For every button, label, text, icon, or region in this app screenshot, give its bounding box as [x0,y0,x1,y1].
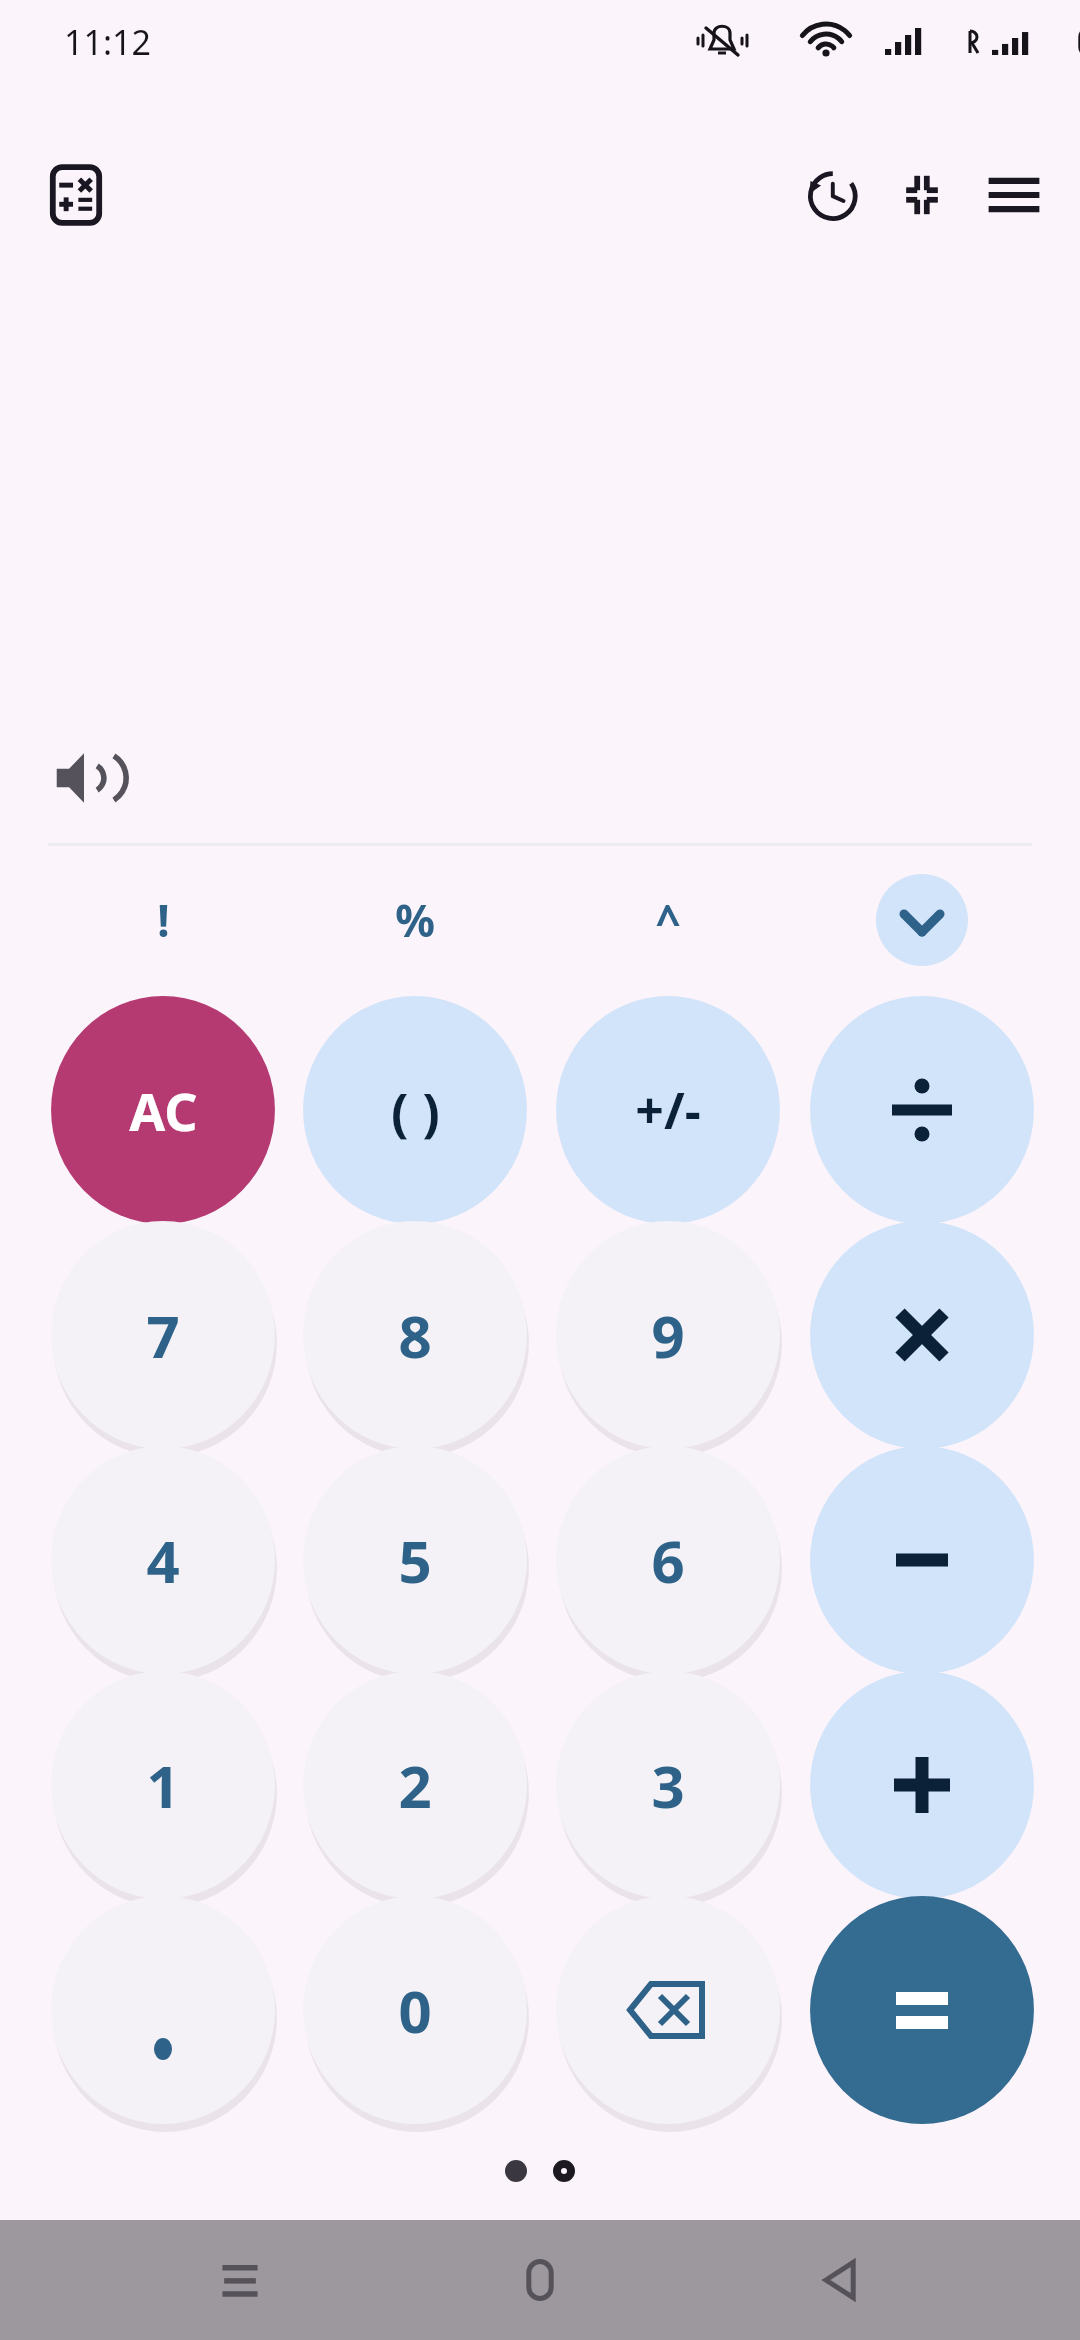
staticText: 6 [651,1521,685,1600]
button[interactable]: 4 [47,1440,279,1680]
staticText: 1 [146,1746,180,1825]
button[interactable]: ( ) [299,990,531,1230]
button[interactable]: Backspace [552,1890,784,2130]
button[interactable]: +/- [552,990,784,1230]
staticText: 8 [398,1296,432,1375]
button[interactable]: Menu [968,149,1060,241]
staticText: ^ [655,890,681,950]
button[interactable]: ! [101,868,225,972]
button[interactable]: 8 [299,1215,531,1455]
button[interactable]: Home [480,2220,600,2340]
button[interactable]: 1 [47,1665,279,1905]
button[interactable]: Subtract [806,1440,1038,1680]
staticText: % [395,890,435,950]
button[interactable]: History [784,149,876,241]
button[interactable]: Equals [806,1890,1038,2130]
button[interactable]: Calculator mode [36,155,116,235]
staticText: 5 [398,1521,432,1600]
button[interactable]: AC [47,990,279,1230]
button[interactable]: 7 [47,1215,279,1455]
staticText: 11:12 [64,19,151,65]
button[interactable]: Decimal point [47,1890,279,2130]
button[interactable]: 6 [552,1440,784,1680]
staticText: ! [157,890,170,950]
button[interactable]: 3 [552,1665,784,1905]
button[interactable]: Divide [806,990,1038,1230]
staticText: AC [129,1075,198,1146]
staticText: 3 [651,1746,685,1825]
button[interactable]: 0 [299,1890,531,2130]
staticText: ( ) [391,1075,440,1146]
button[interactable]: ^ [606,868,730,972]
button[interactable]: 9 [552,1215,784,1455]
button[interactable]: Collapse [876,149,968,241]
button[interactable]: Speak result [36,730,132,826]
staticText: 4 [146,1521,180,1600]
button[interactable]: % [353,868,477,972]
button[interactable]: More functions [860,868,984,972]
button[interactable]: Back [780,2220,900,2340]
button[interactable]: Recents [180,2220,300,2340]
staticText: 2 [398,1746,432,1825]
staticText: 7 [146,1296,180,1375]
button[interactable]: 5 [299,1440,531,1680]
button[interactable]: Add [806,1665,1038,1905]
button[interactable]: 2 [299,1665,531,1905]
staticText: 9 [651,1296,685,1375]
staticText: +/- [635,1076,701,1144]
button[interactable]: Multiply [806,1215,1038,1455]
staticText: 0 [398,1971,432,2050]
